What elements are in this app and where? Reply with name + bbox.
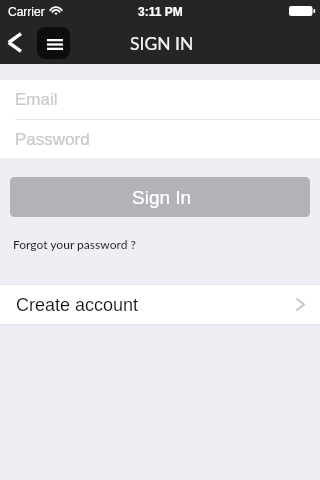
button[interactable]: Email — [0, 80, 320, 119]
staticText: Email — [15, 90, 58, 109]
button[interactable]: Password — [0, 120, 320, 158]
staticText: Carrier — [8, 5, 45, 18]
staticText: Forgot your password ? — [13, 237, 136, 251]
staticText: Sign In — [132, 187, 192, 208]
staticText: Create account — [16, 295, 139, 315]
button[interactable]: Sign In — [10, 177, 310, 217]
button[interactable]: Menu — [37, 27, 70, 59]
button[interactable]: Forgot your password ? — [13, 231, 136, 257]
staticText: Password — [15, 130, 90, 149]
staticText: 3:11 PM — [138, 5, 183, 18]
staticText: SIGN IN — [130, 33, 194, 54]
button[interactable]: Back — [0, 26, 29, 60]
button[interactable]: Create account — [0, 285, 320, 324]
